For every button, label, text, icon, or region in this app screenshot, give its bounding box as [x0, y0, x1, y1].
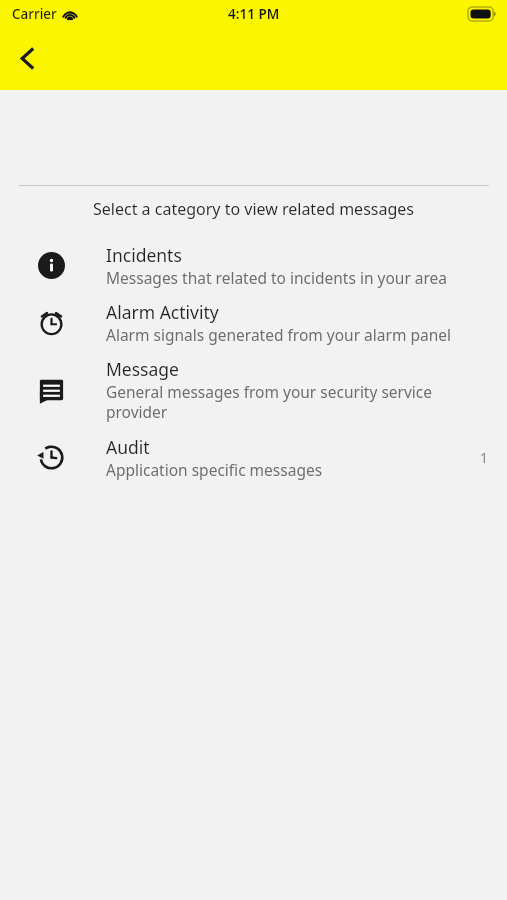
staticText: Alarm signals generated from your alarm … — [106, 324, 451, 345]
staticText: Select a category to view related messag… — [0, 198, 507, 220]
staticText: Message — [106, 357, 179, 381]
button[interactable]: Back — [3, 34, 51, 82]
staticText: 1 — [480, 448, 489, 467]
button[interactable]: Incidents — [0, 237, 507, 294]
staticText: Application specific messages — [106, 459, 323, 480]
staticText: Incidents — [106, 243, 182, 267]
staticText: Messages that related to incidents in yo… — [106, 267, 448, 288]
button[interactable]: Audit — [0, 429, 507, 486]
button[interactable]: Alarm Activity — [0, 294, 507, 351]
staticText: Audit — [106, 435, 150, 459]
staticText: 4:11 PM — [228, 5, 280, 23]
staticText: Carrier — [12, 5, 57, 23]
staticText: Alarm Activity — [106, 300, 219, 324]
button[interactable]: Message — [0, 351, 507, 429]
staticText: General messages from your security serv… — [106, 381, 489, 423]
